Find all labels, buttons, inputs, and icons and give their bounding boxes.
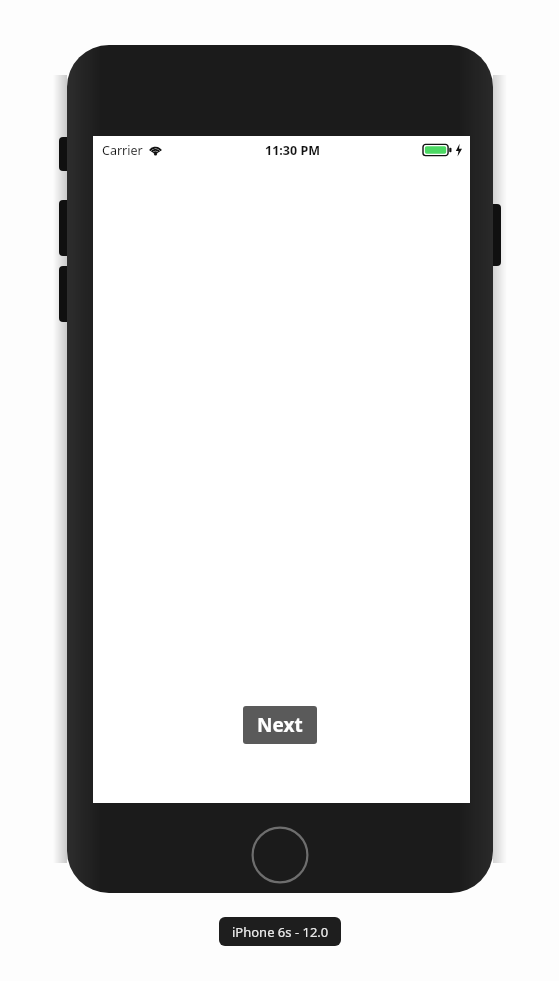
staticText: Next bbox=[257, 712, 303, 738]
button[interactable]: Home bbox=[251, 826, 309, 884]
staticText: 11:30 PM bbox=[265, 142, 320, 159]
button[interactable]: Next bbox=[243, 706, 317, 744]
staticText: iPhone 6s - 12.0 bbox=[232, 923, 329, 941]
staticText: Carrier bbox=[102, 142, 143, 159]
